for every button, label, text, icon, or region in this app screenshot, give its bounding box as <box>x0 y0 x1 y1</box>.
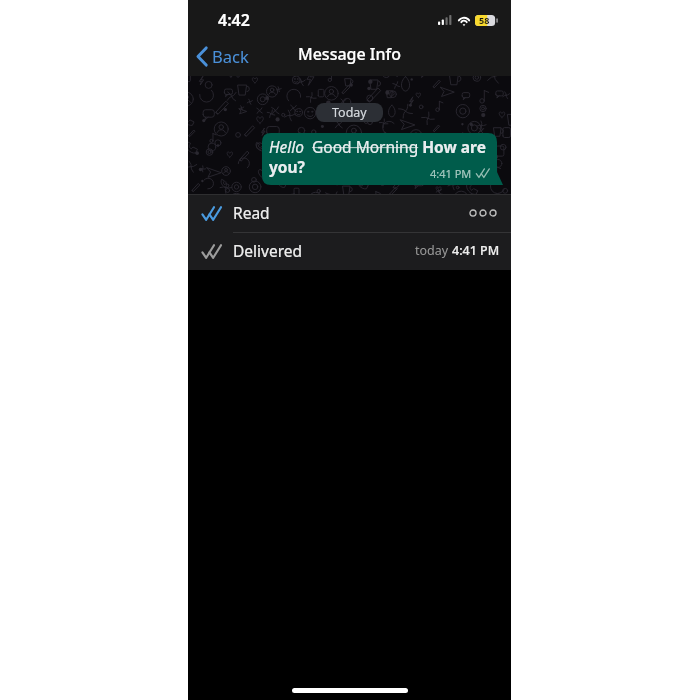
other: Back <box>197 47 207 66</box>
staticText: Message Info <box>298 43 402 65</box>
button[interactable]: Hello Good Morning How are you? <box>262 133 503 185</box>
staticText: 4:42 <box>218 9 250 31</box>
button[interactable]: Delivered <box>188 233 511 270</box>
staticText: Delivered <box>233 240 303 261</box>
button[interactable]: Read <box>188 195 511 232</box>
staticText: Read <box>233 202 270 223</box>
staticText: Today <box>332 104 367 121</box>
staticText: 58 <box>479 14 490 26</box>
staticText: Back <box>212 45 249 67</box>
button[interactable]: More <box>464 205 502 223</box>
staticText: today <box>415 242 452 259</box>
staticText: 4:41 PM <box>430 166 472 181</box>
staticText: 4:41 PM <box>452 242 500 259</box>
button[interactable]: Back <box>188 40 257 72</box>
staticText: Hello Good Morning How are you? <box>269 136 491 177</box>
